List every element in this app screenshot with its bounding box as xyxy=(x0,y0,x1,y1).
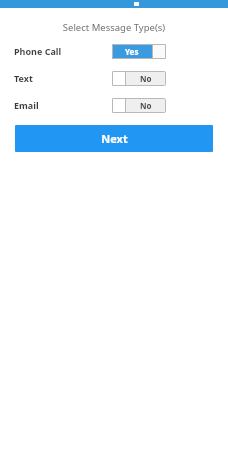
staticText: Phone Call xyxy=(14,45,62,57)
staticText: No xyxy=(140,100,152,111)
button[interactable]: Next xyxy=(15,125,213,152)
button[interactable]: Phone Call toggle xyxy=(112,44,166,59)
staticText: Text xyxy=(14,72,33,84)
button[interactable]: Text toggle xyxy=(112,71,166,86)
staticText: No xyxy=(140,73,152,84)
button[interactable]: Email toggle xyxy=(112,98,166,113)
staticText: Email xyxy=(14,99,39,111)
staticText: Yes xyxy=(125,46,139,57)
staticText: Next xyxy=(101,131,128,146)
staticText: Select Message Type(s) xyxy=(0,21,228,34)
